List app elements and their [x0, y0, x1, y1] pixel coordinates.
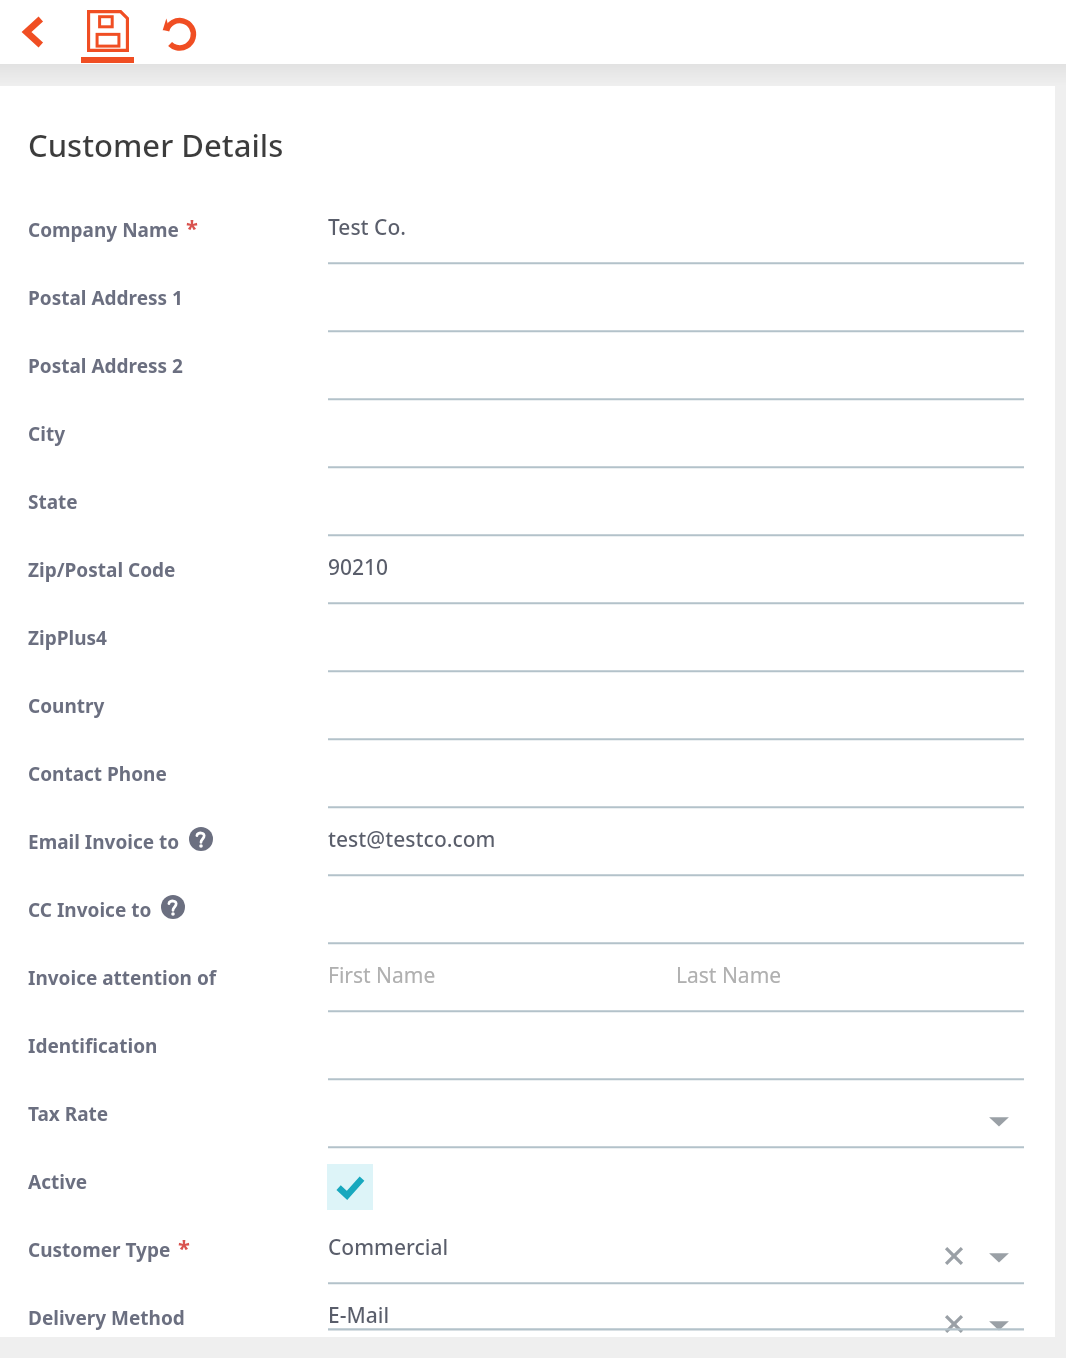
- staticText: Tax Rate: [28, 1101, 109, 1127]
- staticText: Contact Phone: [28, 761, 167, 787]
- button[interactable]: Delivery Method: [0, 1296, 1055, 1337]
- staticText: 90210: [328, 553, 389, 582]
- staticText: Identification: [28, 1033, 158, 1059]
- staticText: *: [186, 212, 198, 242]
- staticText: Email Invoice to: [28, 829, 180, 855]
- button[interactable]: Customer Type: [0, 1228, 1055, 1296]
- button[interactable]: Help: [160, 894, 186, 920]
- button[interactable]: Clear: [936, 1238, 972, 1274]
- button[interactable]: Open dropdown: [981, 1307, 1017, 1343]
- staticText: Company Name: [28, 217, 179, 243]
- button[interactable]: Tax Rate: [0, 1092, 1055, 1160]
- button[interactable]: Save: [76, 5, 138, 67]
- staticText: Customer Type: [28, 1237, 171, 1263]
- staticText: Last Name: [676, 961, 782, 990]
- staticText: CC Invoice to: [28, 897, 152, 923]
- staticText: test@testco.com: [328, 825, 496, 854]
- button[interactable]: Active: [0, 1160, 1055, 1228]
- staticText: City: [28, 421, 65, 447]
- button[interactable]: Postal Address 1: [0, 276, 1055, 344]
- button[interactable]: Country: [0, 684, 1055, 752]
- staticText: State: [28, 489, 78, 515]
- button[interactable]: Undo: [151, 4, 207, 60]
- staticText: Delivery Method: [28, 1305, 185, 1331]
- button[interactable]: City: [0, 412, 1055, 480]
- button[interactable]: State: [0, 480, 1055, 548]
- button[interactable]: Company Name: [0, 208, 1055, 276]
- staticText: First Name: [328, 961, 436, 990]
- staticText: ZipPlus4: [28, 625, 107, 651]
- button[interactable]: ZipPlus4: [0, 616, 1055, 684]
- button[interactable]: Clear: [936, 1306, 972, 1342]
- button[interactable]: Email Invoice to: [0, 820, 1055, 888]
- button[interactable]: Open dropdown: [981, 1239, 1017, 1275]
- staticText: Active: [28, 1169, 88, 1195]
- staticText: Zip/Postal Code: [28, 557, 176, 583]
- button[interactable]: Contact Phone: [0, 752, 1055, 820]
- button[interactable]: Back: [8, 6, 60, 58]
- button[interactable]: Identification: [0, 1024, 1055, 1092]
- staticText: Postal Address 2: [28, 353, 183, 379]
- staticText: Commercial: [328, 1233, 449, 1262]
- button[interactable]: Active checkbox, checked: [327, 1164, 373, 1210]
- staticText: *: [178, 1232, 190, 1262]
- staticText: Invoice attention of: [28, 965, 217, 991]
- button[interactable]: Zip/Postal Code: [0, 548, 1055, 616]
- staticText: E-Mail: [328, 1301, 390, 1330]
- button[interactable]: CC Invoice to: [0, 888, 1055, 956]
- staticText: Test Co.: [328, 213, 406, 242]
- button[interactable]: Help: [188, 826, 214, 852]
- button[interactable]: Invoice attention of: [0, 956, 1055, 1024]
- staticText: Postal Address 1: [28, 285, 183, 311]
- button[interactable]: Open dropdown: [981, 1103, 1017, 1139]
- staticText: Country: [28, 693, 105, 719]
- button[interactable]: Postal Address 2: [0, 344, 1055, 412]
- staticText: Customer Details: [28, 124, 284, 166]
